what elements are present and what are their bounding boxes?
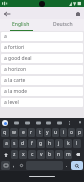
button[interactable]: y bbox=[44, 128, 51, 137]
button[interactable]: o bbox=[68, 128, 75, 137]
staticText: s bbox=[13, 140, 16, 147]
staticText: w bbox=[12, 129, 16, 136]
button[interactable]: d bbox=[19, 139, 27, 148]
button[interactable]: c bbox=[28, 150, 36, 159]
button[interactable]: English bbox=[0, 19, 42, 30]
staticText: r bbox=[30, 129, 33, 136]
button[interactable]: Keyboard tool 5 bbox=[56, 120, 62, 125]
button[interactable]: Switch keyboard bbox=[1, 161, 10, 170]
staticText: h bbox=[48, 140, 52, 147]
button[interactable]: . bbox=[64, 161, 70, 170]
button[interactable]: a fortiori bbox=[1, 43, 83, 52]
button[interactable]: Keyboard tool 4 bbox=[45, 120, 51, 125]
staticText: a la mode bbox=[4, 88, 28, 95]
staticText: a level bbox=[4, 99, 19, 106]
button[interactable]: j bbox=[55, 139, 63, 148]
button[interactable]: a bbox=[3, 139, 10, 148]
staticText: c bbox=[31, 151, 34, 158]
button[interactable]: u bbox=[52, 128, 59, 137]
staticText: y bbox=[46, 129, 49, 136]
staticText: , bbox=[13, 162, 15, 169]
button[interactable]: Keyboard tool 2 bbox=[24, 120, 30, 125]
button[interactable]: a level bbox=[1, 98, 83, 107]
button[interactable]: Keyboard tool 1 bbox=[13, 120, 19, 125]
button[interactable]: a bbox=[1, 32, 83, 41]
button[interactable]: More options bbox=[67, 120, 72, 125]
staticText: n bbox=[57, 151, 61, 158]
button[interactable]: Backspace bbox=[73, 150, 83, 159]
button[interactable]: f bbox=[28, 139, 36, 148]
button[interactable]: Clear bbox=[72, 8, 83, 19]
staticText: a good deal bbox=[4, 55, 32, 62]
button[interactable]: z bbox=[11, 150, 18, 159]
staticText: English bbox=[12, 21, 30, 28]
staticText: f bbox=[31, 140, 33, 147]
button[interactable]: Keyboard tool 3 bbox=[35, 120, 41, 125]
button[interactable]: t bbox=[36, 128, 43, 137]
button[interactable]: n bbox=[55, 150, 63, 159]
staticText: o bbox=[70, 129, 74, 136]
button[interactable]: v bbox=[37, 150, 45, 159]
button[interactable]: k bbox=[64, 139, 72, 148]
staticText: a la carte bbox=[4, 77, 26, 84]
staticText: u bbox=[54, 129, 58, 136]
button[interactable]: a good deal bbox=[1, 54, 83, 63]
button[interactable]: r bbox=[28, 128, 35, 137]
staticText: t bbox=[39, 129, 41, 136]
button[interactable]: q bbox=[1, 128, 9, 137]
button[interactable]: Voice input bbox=[77, 120, 82, 125]
staticText: k bbox=[67, 140, 70, 147]
button[interactable]: g bbox=[37, 139, 45, 148]
staticText: e bbox=[22, 129, 25, 136]
button[interactable]: i bbox=[60, 128, 67, 137]
staticText: q bbox=[3, 129, 7, 136]
button[interactable]: h bbox=[46, 139, 54, 148]
staticText: x bbox=[22, 151, 25, 158]
button[interactable]: x bbox=[19, 150, 27, 159]
button[interactable]: Shift bbox=[1, 150, 10, 159]
staticText: z bbox=[13, 151, 16, 158]
staticText: Deutsch bbox=[53, 21, 73, 28]
staticText: a fortiori bbox=[4, 44, 25, 51]
button[interactable]: w bbox=[10, 128, 18, 137]
button[interactable]: e bbox=[19, 128, 27, 137]
button[interactable]: b bbox=[46, 150, 54, 159]
button[interactable]: Deutsch bbox=[42, 19, 84, 30]
staticText: j bbox=[58, 140, 60, 147]
staticText: p bbox=[78, 129, 82, 136]
staticText: l bbox=[76, 140, 78, 147]
staticText: v bbox=[40, 151, 43, 158]
button[interactable]: a horizon bbox=[1, 65, 83, 74]
button[interactable]: p bbox=[76, 128, 83, 137]
staticText: m bbox=[66, 151, 71, 158]
staticText: d bbox=[21, 140, 25, 147]
button[interactable]: Back bbox=[1, 8, 12, 19]
button[interactable]: m bbox=[64, 150, 72, 159]
button[interactable]: Emoji bbox=[18, 161, 25, 170]
button[interactable]: a la mode bbox=[1, 87, 83, 96]
staticText: a horizon bbox=[4, 66, 27, 73]
staticText: a bbox=[5, 140, 8, 147]
staticText: a bbox=[4, 33, 7, 40]
button[interactable]: , bbox=[11, 161, 17, 170]
staticText: b bbox=[48, 151, 52, 158]
button[interactable]: l bbox=[73, 139, 81, 148]
staticText: g bbox=[39, 140, 43, 147]
button[interactable]: Search bbox=[71, 161, 83, 170]
button[interactable]: s bbox=[11, 139, 18, 148]
button[interactable]: Assistant bbox=[2, 120, 8, 126]
button[interactable]: a la carte bbox=[1, 76, 83, 85]
staticText: . bbox=[66, 162, 68, 169]
staticText: i bbox=[63, 129, 65, 136]
